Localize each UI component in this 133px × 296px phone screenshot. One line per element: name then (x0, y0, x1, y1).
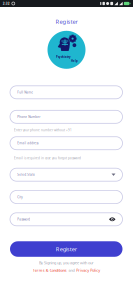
button[interactable]: Privacy Policy (76, 268, 100, 273)
staticText: Register (56, 245, 77, 253)
staticText: Select State (17, 173, 35, 177)
staticText: Register (55, 17, 77, 25)
staticText: and (68, 268, 74, 273)
button[interactable]: Terms & Conditions (33, 268, 67, 273)
button[interactable]: Register (10, 241, 122, 257)
staticText: Full Name (17, 90, 33, 94)
staticText: Email is required in case you forgot pas… (14, 156, 81, 160)
button[interactable]: Email address (10, 137, 122, 150)
button[interactable]: City (10, 190, 122, 203)
staticText: Psychiatry (56, 55, 71, 59)
button[interactable]: Phone Number (10, 110, 122, 123)
staticText: Help (71, 59, 78, 63)
staticText: Enter your phone number without +91 (14, 128, 72, 132)
staticText: Password (17, 217, 30, 221)
staticText: Email address (17, 141, 38, 145)
staticText: Privacy Policy (76, 268, 100, 273)
staticText: 2:32 (3, 1, 10, 6)
staticText: City (17, 195, 22, 199)
staticText: Phone Number (17, 115, 40, 119)
staticText: Terms & Conditions (33, 268, 67, 273)
button[interactable]: Password (10, 213, 122, 226)
button[interactable]: Select State (10, 168, 122, 181)
staticText: By Signing up, you agree with our (39, 260, 94, 265)
button[interactable]: Full Name (10, 86, 122, 99)
